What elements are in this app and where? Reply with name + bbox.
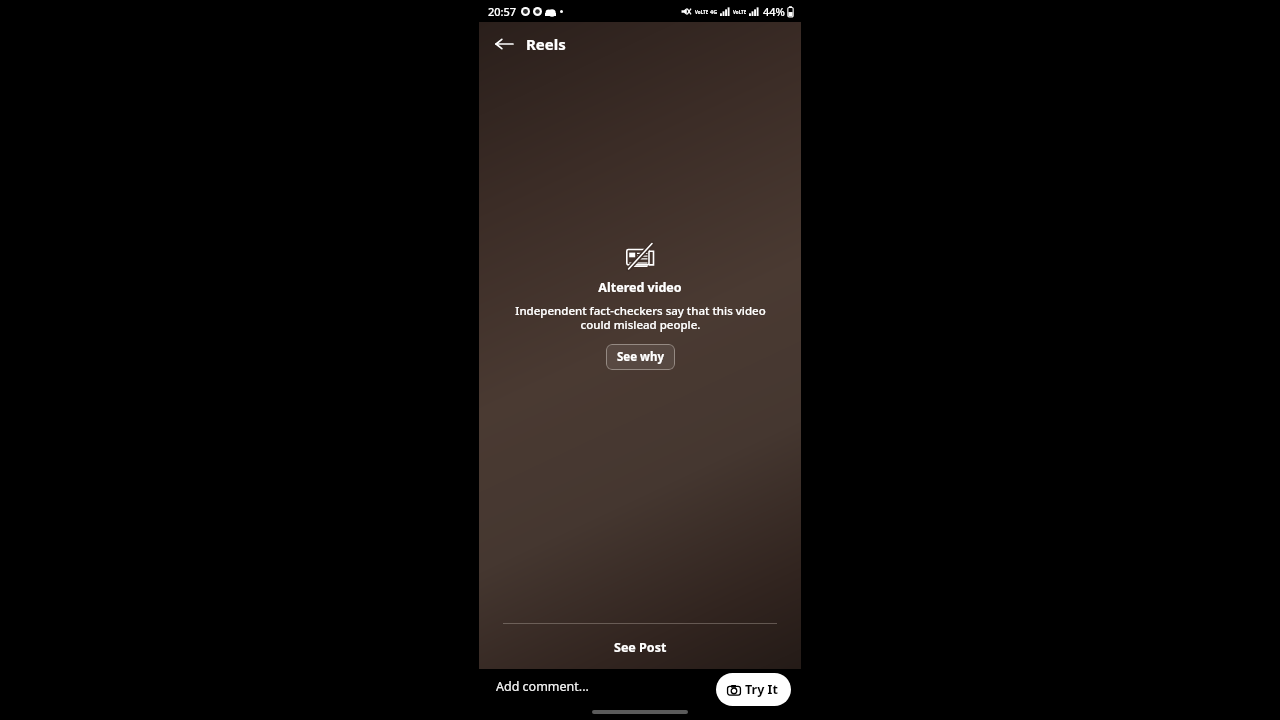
button[interactable]: Back (489, 29, 519, 59)
button[interactable]: Add comment... (479, 672, 599, 701)
staticText: See Post (614, 639, 667, 656)
staticText: Reels (526, 34, 566, 54)
staticText: Altered video (598, 279, 682, 296)
button[interactable]: See Post (479, 624, 801, 669)
staticText: See why (617, 349, 664, 365)
staticText: Try It (745, 681, 778, 698)
staticText: Independent fact-checkers say that this … (515, 303, 766, 332)
button[interactable]: Try It (716, 673, 791, 706)
staticText: 20:57 (488, 4, 517, 19)
staticText: 44% (763, 4, 785, 19)
staticText: VoLTE (695, 9, 709, 15)
staticText: VoLTE (733, 9, 747, 15)
staticText: 4G (710, 8, 718, 15)
button[interactable]: See why (606, 344, 675, 370)
